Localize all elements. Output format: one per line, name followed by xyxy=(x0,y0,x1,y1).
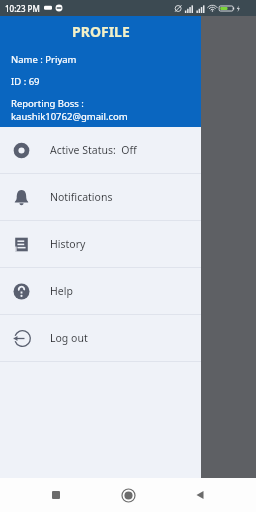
staticText: Help xyxy=(50,284,73,298)
staticText: Name : Priyam xyxy=(11,53,77,66)
staticText: Notifications xyxy=(50,190,113,204)
button[interactable]: History xyxy=(0,221,201,267)
button[interactable]: Recent apps xyxy=(32,478,80,512)
button[interactable]: Active Status: Off xyxy=(0,127,201,173)
staticText: 10:23 PM xyxy=(5,3,40,14)
staticText: Active Status: Off xyxy=(50,143,137,157)
button[interactable]: Back xyxy=(176,478,224,512)
staticText: Log out xyxy=(50,331,88,345)
button[interactable]: Notifications xyxy=(0,174,201,220)
button[interactable]: Help xyxy=(0,268,201,314)
staticText: PROFILE xyxy=(72,22,130,41)
staticText: kaushik10762@gmail.com xyxy=(11,110,128,123)
staticText: Reporting Boss : xyxy=(11,97,84,110)
staticText: ID : 69 xyxy=(11,75,40,88)
button[interactable]: Log out xyxy=(0,315,201,361)
button[interactable]: Home xyxy=(104,478,152,512)
staticText: History xyxy=(50,237,86,251)
